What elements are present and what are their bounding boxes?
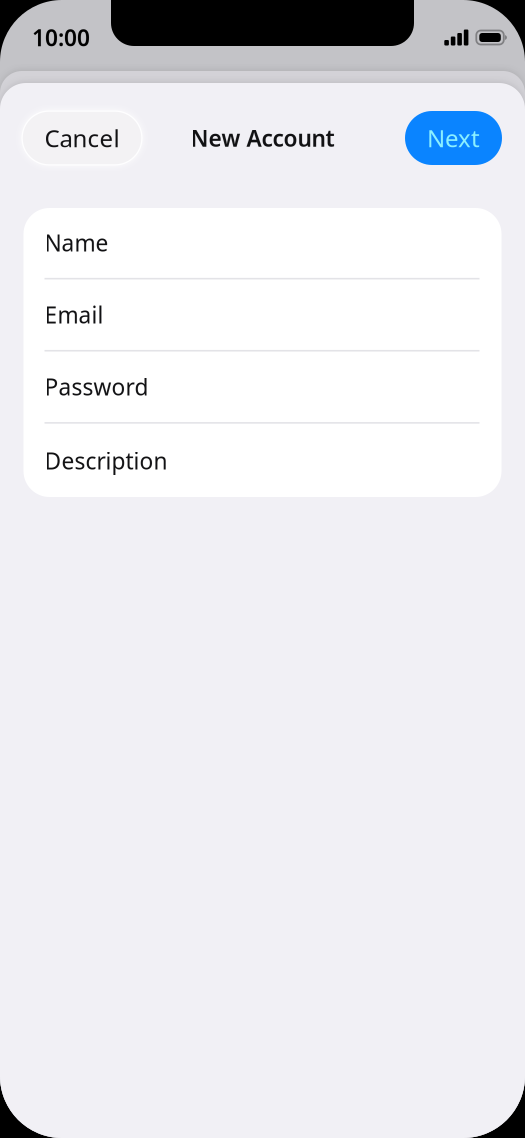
button[interactable]: Description bbox=[23, 424, 501, 498]
staticText: Name bbox=[44, 227, 108, 258]
staticText: Email bbox=[44, 300, 103, 330]
staticText: Cancel bbox=[44, 122, 119, 154]
staticText: Password bbox=[44, 372, 148, 402]
button[interactable]: Cancel bbox=[22, 111, 142, 165]
button[interactable]: Name bbox=[23, 207, 501, 279]
button[interactable]: Password bbox=[23, 352, 501, 424]
staticText: New Account bbox=[190, 123, 334, 153]
staticText: 10:00 bbox=[32, 22, 90, 52]
staticText: Description bbox=[44, 446, 167, 476]
button[interactable]: Email bbox=[23, 279, 501, 352]
staticText: Next bbox=[427, 122, 480, 154]
button[interactable]: Next bbox=[405, 111, 502, 165]
